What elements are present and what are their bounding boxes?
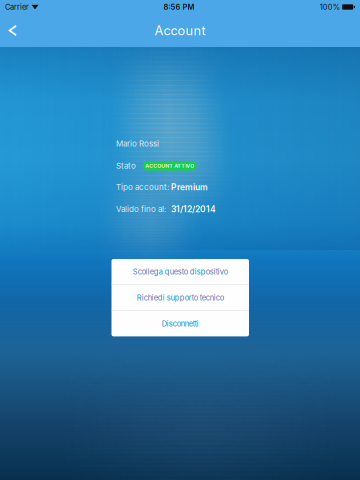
staticText: Tipo account:	[116, 182, 169, 192]
staticText: Mario Rossi	[116, 139, 159, 148]
staticText: 100%	[320, 2, 340, 11]
staticText: ACCOUNT ATTIVO	[145, 163, 194, 169]
button[interactable]: Scollega questo dispositivo	[111, 259, 249, 284]
staticText: Valido fino al:	[116, 204, 166, 214]
button[interactable]: Back	[0, 14, 26, 46]
staticText: 8:56 PM	[164, 2, 195, 11]
staticText: Disconnetti	[162, 319, 199, 328]
button[interactable]: Disconnetti	[111, 311, 249, 336]
staticText: Carrier	[5, 2, 29, 11]
button[interactable]: Richiedi supporto tecnico	[111, 285, 249, 310]
staticText: Stato	[116, 161, 136, 171]
staticText: Richiedi supporto tecnico	[137, 293, 224, 302]
staticText: Scollega questo dispositivo	[133, 267, 228, 276]
staticText: Premium	[171, 182, 208, 192]
staticText: Account	[154, 23, 205, 38]
staticText: 31/12/2014	[171, 204, 216, 214]
